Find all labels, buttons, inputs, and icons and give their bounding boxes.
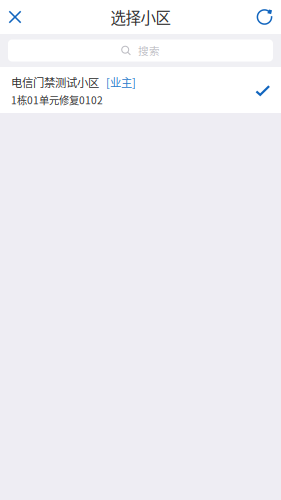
- staticText: 电信门禁测试小区: [11, 74, 99, 90]
- button[interactable]: 搜索: [0, 34, 281, 67]
- button[interactable]: 电信门禁测试小区: [0, 67, 281, 113]
- staticText: 选择小区: [110, 6, 170, 28]
- staticText: 1栋01单元修复0102: [11, 92, 103, 107]
- button[interactable]: 刷新: [248, 0, 281, 34]
- staticText: [业主]: [106, 74, 136, 90]
- button[interactable]: 关闭: [0, 0, 30, 34]
- staticText: 搜索: [138, 43, 160, 58]
